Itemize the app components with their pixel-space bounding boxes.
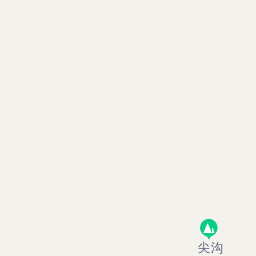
button[interactable]: 尖沟 map marker [189, 218, 229, 256]
other: 尖沟 map marker [189, 218, 229, 241]
staticText: 尖沟 [194, 240, 227, 256]
